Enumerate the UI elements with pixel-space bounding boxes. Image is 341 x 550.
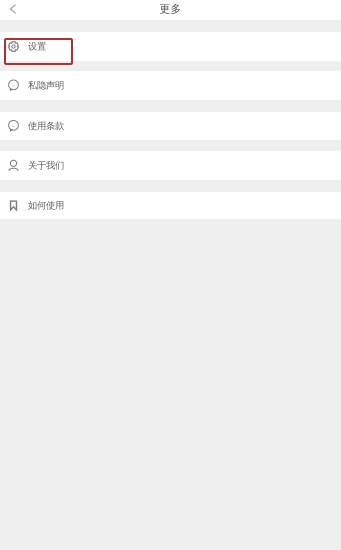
staticText: 设置 — [28, 41, 46, 52]
button[interactable]: 如何使用 — [0, 192, 341, 219]
staticText: 关于我们 — [28, 160, 64, 171]
button[interactable]: 关于我们 — [0, 151, 341, 180]
button[interactable]: 使用条款 — [0, 112, 341, 140]
staticText: 使用条款 — [28, 120, 64, 132]
button[interactable]: 设置 — [0, 32, 341, 61]
button[interactable]: Back — [0, 0, 26, 20]
staticText: 更多 — [159, 2, 181, 15]
button[interactable]: 私隐声明 — [0, 71, 341, 100]
staticText: 私隐声明 — [28, 80, 64, 91]
staticText: 如何使用 — [28, 200, 64, 211]
